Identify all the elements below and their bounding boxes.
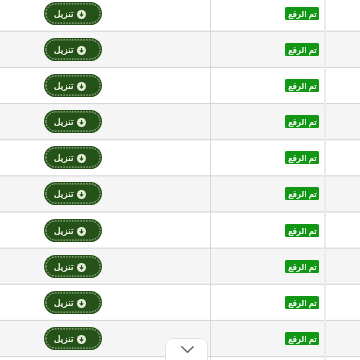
- button[interactable]: تم الرفع: [285, 332, 319, 345]
- staticText: تنزيل: [54, 226, 74, 236]
- staticText: تم الرفع: [288, 333, 317, 345]
- staticText: تم الرفع: [288, 80, 317, 92]
- staticText: تنزيل: [54, 334, 74, 344]
- staticText: تنزيل: [54, 153, 74, 163]
- button[interactable]: Expand list: [165, 338, 208, 360]
- staticText: تنزيل: [54, 298, 74, 308]
- staticText: تنزيل: [54, 81, 74, 91]
- staticText: تنزيل: [54, 189, 74, 199]
- staticText: تنزيل: [54, 9, 74, 19]
- button[interactable]: تم الرفع: [285, 224, 319, 237]
- button[interactable]: تنزيل: [44, 255, 102, 278]
- button[interactable]: تنزيل: [44, 219, 102, 242]
- staticText: تنزيل: [54, 117, 74, 127]
- button[interactable]: تنزيل: [44, 74, 102, 97]
- staticText: تم الرفع: [288, 116, 317, 128]
- staticText: تنزيل: [54, 45, 74, 55]
- button[interactable]: تم الرفع: [285, 151, 319, 164]
- staticText: تم الرفع: [288, 44, 317, 56]
- button[interactable]: تم الرفع: [285, 115, 319, 128]
- button[interactable]: تنزيل: [44, 38, 102, 61]
- button[interactable]: تنزيل: [44, 146, 102, 169]
- button[interactable]: تنزيل: [44, 291, 102, 314]
- button[interactable]: تم الرفع: [285, 43, 319, 56]
- button[interactable]: تم الرفع: [285, 260, 319, 273]
- button[interactable]: تنزيل: [44, 327, 102, 350]
- staticText: تم الرفع: [288, 188, 317, 200]
- staticText: تم الرفع: [288, 152, 317, 164]
- staticText: تم الرفع: [288, 297, 317, 309]
- staticText: تم الرفع: [288, 261, 317, 273]
- button[interactable]: تم الرفع: [285, 296, 319, 309]
- staticText: تنزيل: [54, 262, 74, 272]
- button[interactable]: تنزيل: [44, 2, 102, 25]
- staticText: تم الرفع: [288, 225, 317, 237]
- button[interactable]: تنزيل: [44, 110, 102, 133]
- button[interactable]: تم الرفع: [285, 187, 319, 200]
- button[interactable]: تم الرفع: [285, 7, 319, 20]
- button[interactable]: تنزيل: [44, 182, 102, 205]
- button[interactable]: تم الرفع: [285, 79, 319, 92]
- staticText: تم الرفع: [288, 8, 317, 20]
